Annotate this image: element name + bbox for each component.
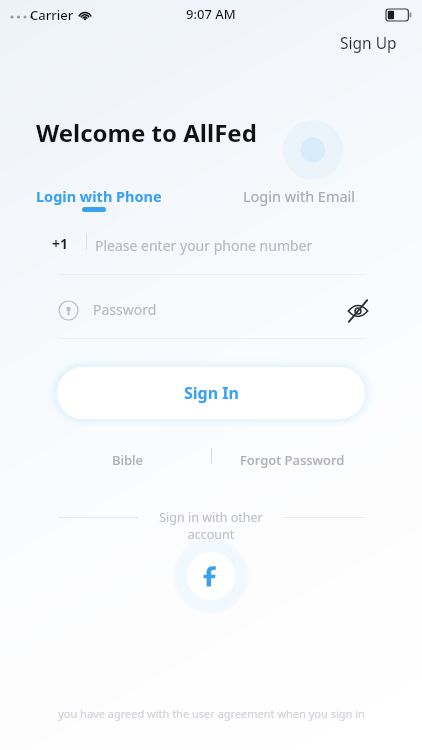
button[interactable]: Password	[93, 300, 157, 319]
staticText: Login with Email	[243, 186, 356, 206]
button[interactable]: Sign In	[57, 367, 365, 419]
staticText: Sign In	[184, 382, 239, 404]
staticText: Sign in with other account	[138, 509, 284, 543]
button[interactable]: Forgot Password	[228, 447, 357, 473]
button[interactable]: Sign Up	[330, 28, 407, 57]
staticText: Login with Phone	[36, 186, 162, 206]
button[interactable]: Show password	[345, 298, 371, 324]
button[interactable]: Login with Email	[237, 183, 362, 209]
staticText: Forgot Password	[240, 451, 345, 469]
staticText: Welcome to AllFed	[36, 116, 257, 149]
staticText: +1	[52, 234, 69, 253]
button[interactable]: Login with Phone	[30, 183, 168, 209]
staticText: Please enter your phone number	[95, 236, 313, 255]
button[interactable]: Sign in with Facebook	[187, 552, 235, 600]
button[interactable]: Please enter your phone number	[95, 236, 313, 255]
button[interactable]: Bible	[100, 447, 156, 473]
staticText: Sign Up	[340, 32, 397, 53]
staticText: Carrier	[30, 6, 74, 24]
staticText: you have agreed with the user agreement …	[58, 706, 365, 721]
staticText: Password	[93, 300, 157, 319]
staticText: Bible	[112, 451, 144, 469]
staticText: 9:07 AM	[186, 5, 236, 23]
